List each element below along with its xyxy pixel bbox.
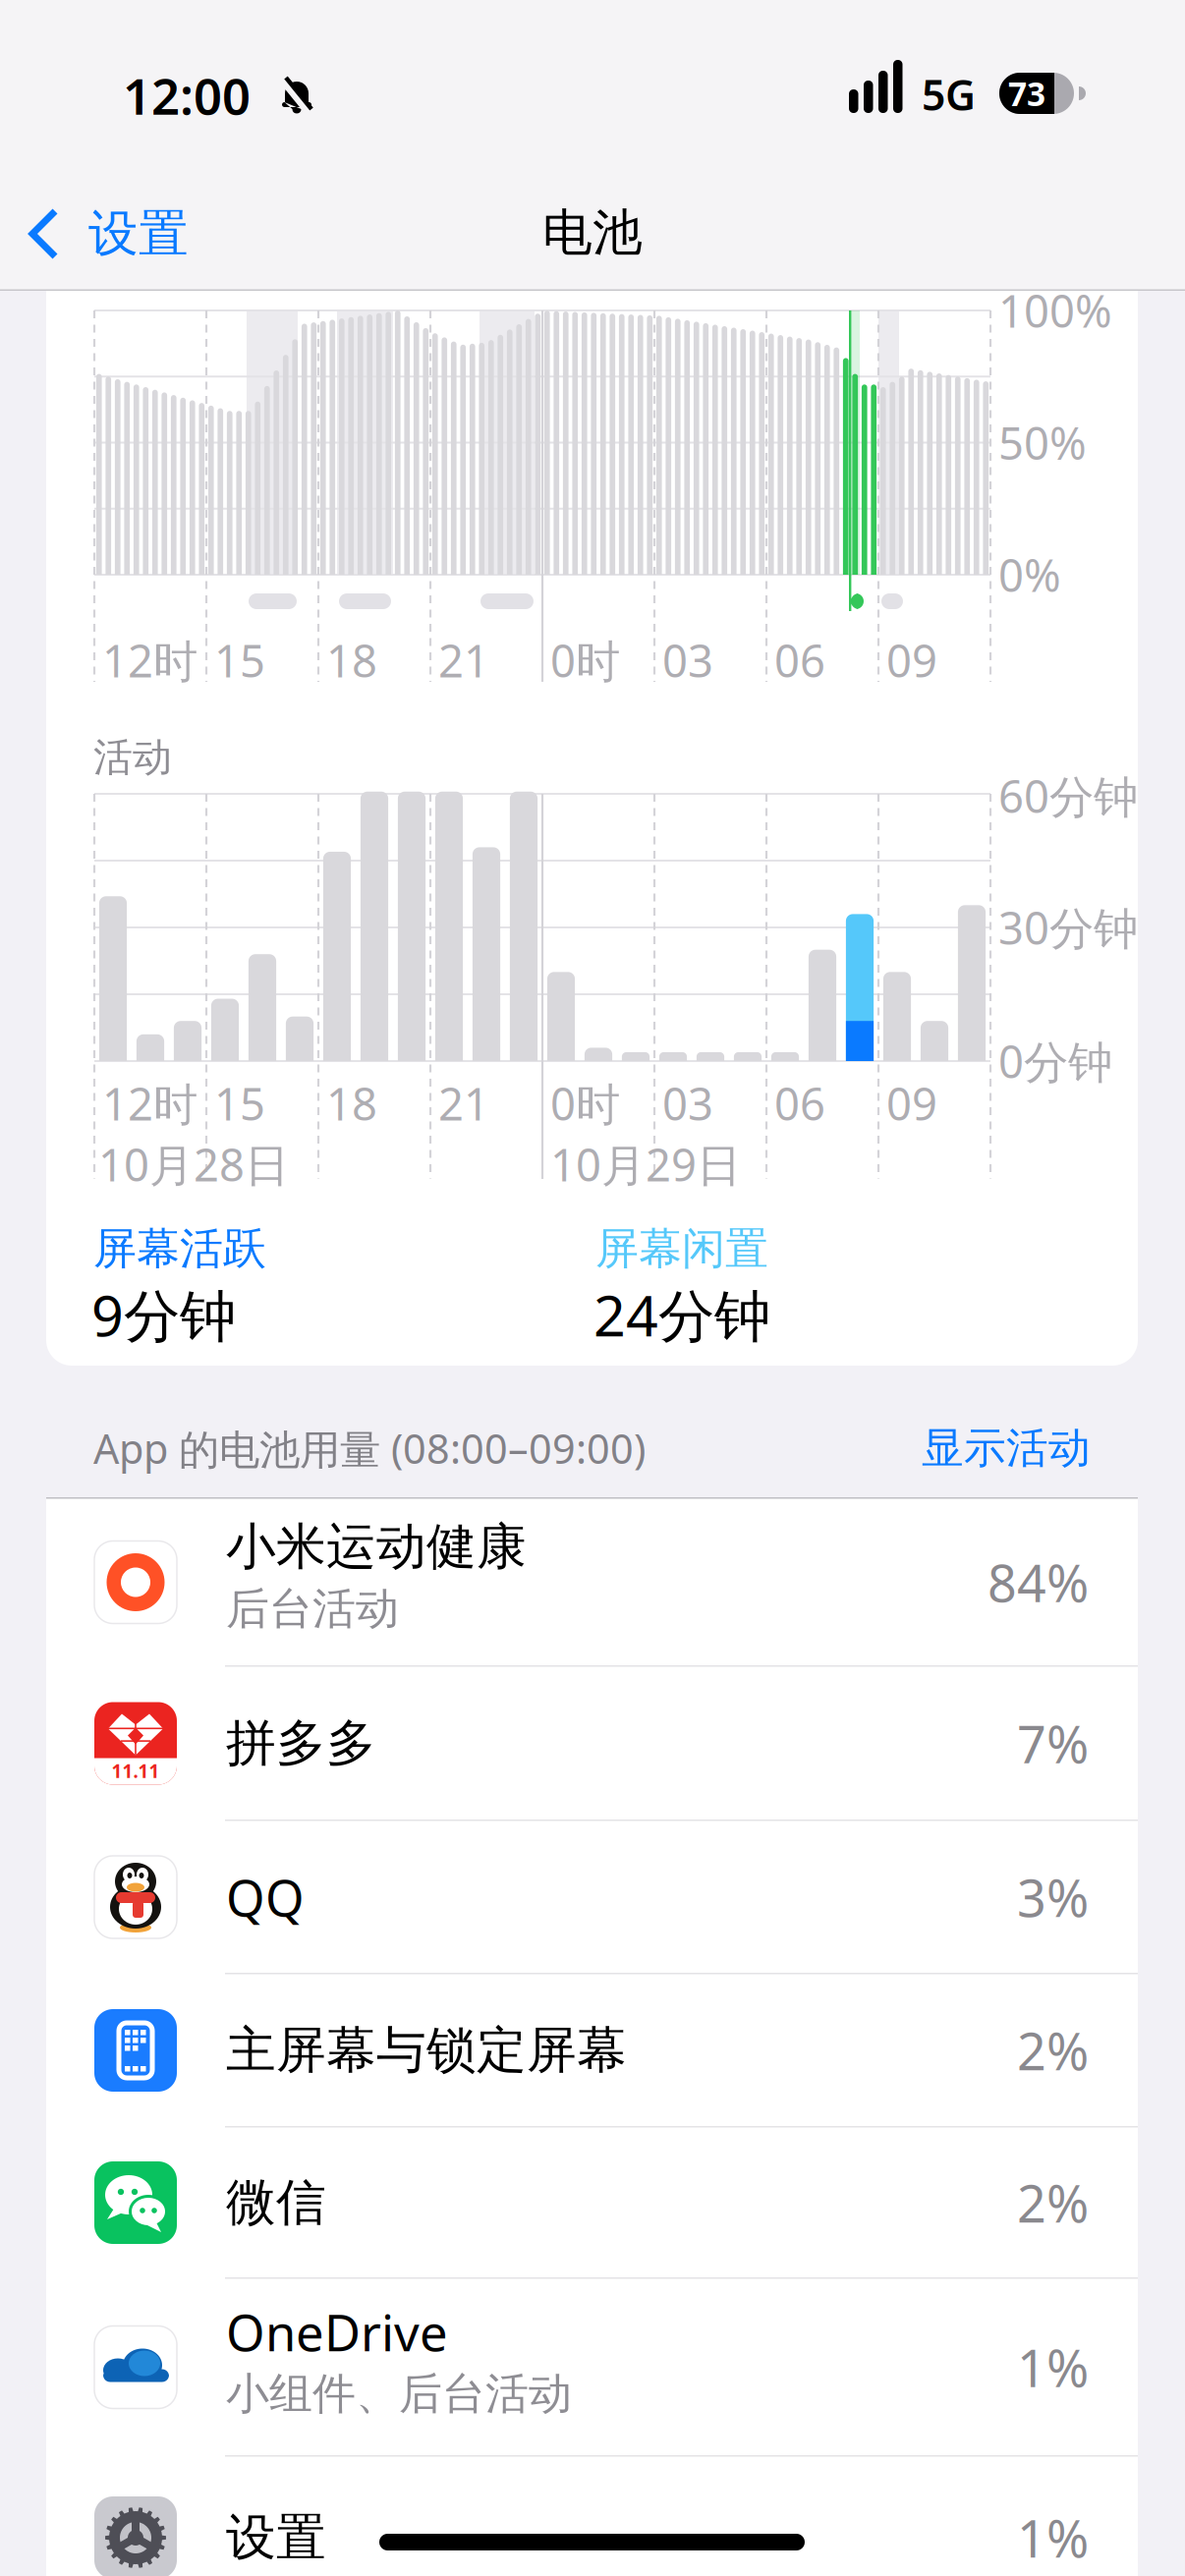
button[interactable]: 设置 — [46, 2456, 1138, 2576]
staticText: 2% — [1017, 2169, 1089, 2237]
staticText: 09 — [886, 631, 937, 690]
staticText: 显示活动 — [922, 1422, 1091, 1474]
staticText: 03 — [662, 1074, 713, 1133]
staticText: 0分钟 — [998, 1031, 1112, 1091]
staticText: 24分钟 — [593, 1277, 770, 1352]
staticText: 21 — [438, 631, 489, 690]
staticText: 10月29日 — [550, 1135, 741, 1194]
staticText: 11.11 — [112, 1759, 160, 1783]
staticText: 100% — [998, 281, 1112, 340]
button[interactable]: 设置 — [24, 195, 289, 273]
staticText: 12:00 — [123, 62, 251, 128]
staticText: App 的电池用量 (08:00–09:00) — [93, 1421, 646, 1475]
staticText: 后台活动 — [226, 1582, 399, 1635]
staticText: 1% — [1017, 2333, 1089, 2401]
staticText: 屏幕活跃 — [93, 1222, 266, 1275]
staticText: OneDrive — [226, 2299, 448, 2365]
button[interactable]: 微信 — [46, 2127, 1138, 2278]
button[interactable]: OneDrive — [46, 2278, 1138, 2456]
staticText: 5G — [922, 67, 976, 122]
staticText: 18 — [326, 1074, 377, 1133]
staticText: 9分钟 — [91, 1277, 236, 1352]
staticText: 设置 — [226, 2507, 326, 2568]
staticText: 84% — [987, 1548, 1089, 1616]
staticText: 主屏幕与锁定屏幕 — [226, 2020, 627, 2081]
staticText: 60分钟 — [998, 766, 1138, 825]
staticText: 屏幕闲置 — [595, 1222, 768, 1275]
staticText: 0时 — [550, 1074, 620, 1133]
staticText: 小组件、后台活动 — [226, 2367, 572, 2420]
staticText: 50% — [998, 413, 1087, 472]
staticText: 电池 — [542, 202, 643, 263]
button[interactable]: 拼多多 — [46, 1666, 1138, 1820]
staticText: 12时 — [102, 631, 197, 690]
staticText: QQ — [226, 1864, 305, 1930]
staticText: 0% — [998, 545, 1061, 604]
button[interactable]: 小米运动健康 — [46, 1498, 1138, 1666]
staticText: 15 — [214, 1074, 265, 1133]
staticText: 小米运动健康 — [226, 1516, 527, 1577]
staticText: 12时 — [102, 1074, 197, 1133]
staticText: 设置 — [88, 203, 189, 264]
staticText: 2% — [1017, 2016, 1089, 2084]
staticText: 1% — [1017, 2504, 1089, 2572]
staticText: 73 — [1008, 72, 1045, 115]
staticText: 21 — [438, 1074, 489, 1133]
staticText: 09 — [886, 1074, 937, 1133]
staticText: 06 — [774, 631, 825, 690]
staticText: 微信 — [226, 2172, 326, 2233]
staticText: 3% — [1017, 1863, 1089, 1931]
staticText: 30分钟 — [998, 898, 1138, 957]
staticText: 15 — [214, 631, 265, 690]
button[interactable]: QQ — [46, 1820, 1138, 1974]
staticText: 7% — [1017, 1709, 1089, 1777]
button[interactable]: 主屏幕与锁定屏幕 — [46, 1974, 1138, 2127]
staticText: 0时 — [550, 631, 620, 690]
staticText: 06 — [774, 1074, 825, 1133]
staticText: 拼多多 — [226, 1713, 376, 1774]
staticText: 10月28日 — [98, 1135, 289, 1194]
staticText: 03 — [662, 631, 713, 690]
staticText: 18 — [326, 631, 377, 690]
staticText: 活动 — [93, 733, 172, 782]
